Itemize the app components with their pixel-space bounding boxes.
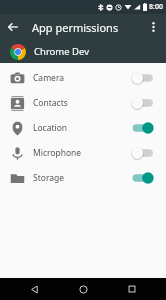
button[interactable]: Recents: [117, 278, 147, 300]
button[interactable]: Off: [131, 70, 157, 86]
button[interactable]: Back: [0, 14, 26, 40]
button[interactable]: On: [131, 120, 157, 136]
button[interactable]: Camera: [0, 65, 166, 90]
staticText: Chrome Dev: [34, 45, 89, 58]
button[interactable]: Contacts: [0, 90, 166, 115]
staticText: Storage: [33, 172, 65, 184]
button[interactable]: On: [131, 170, 157, 186]
staticText: Contacts: [33, 97, 68, 109]
staticText: Camera: [33, 72, 64, 84]
button[interactable]: More options: [140, 14, 166, 40]
staticText: 8:00: [149, 2, 163, 12]
button[interactable]: Back: [19, 278, 49, 300]
staticText: Microphone: [33, 147, 82, 159]
button[interactable]: Microphone: [0, 140, 166, 165]
button[interactable]: Home: [68, 278, 98, 300]
button[interactable]: Chrome Dev: [0, 40, 166, 63]
staticText: App permissions: [32, 20, 119, 35]
button[interactable]: Location: [0, 115, 166, 140]
button[interactable]: Storage: [0, 165, 166, 190]
button[interactable]: Off: [131, 145, 157, 161]
button[interactable]: Off: [131, 95, 157, 111]
staticText: Location: [33, 122, 68, 134]
